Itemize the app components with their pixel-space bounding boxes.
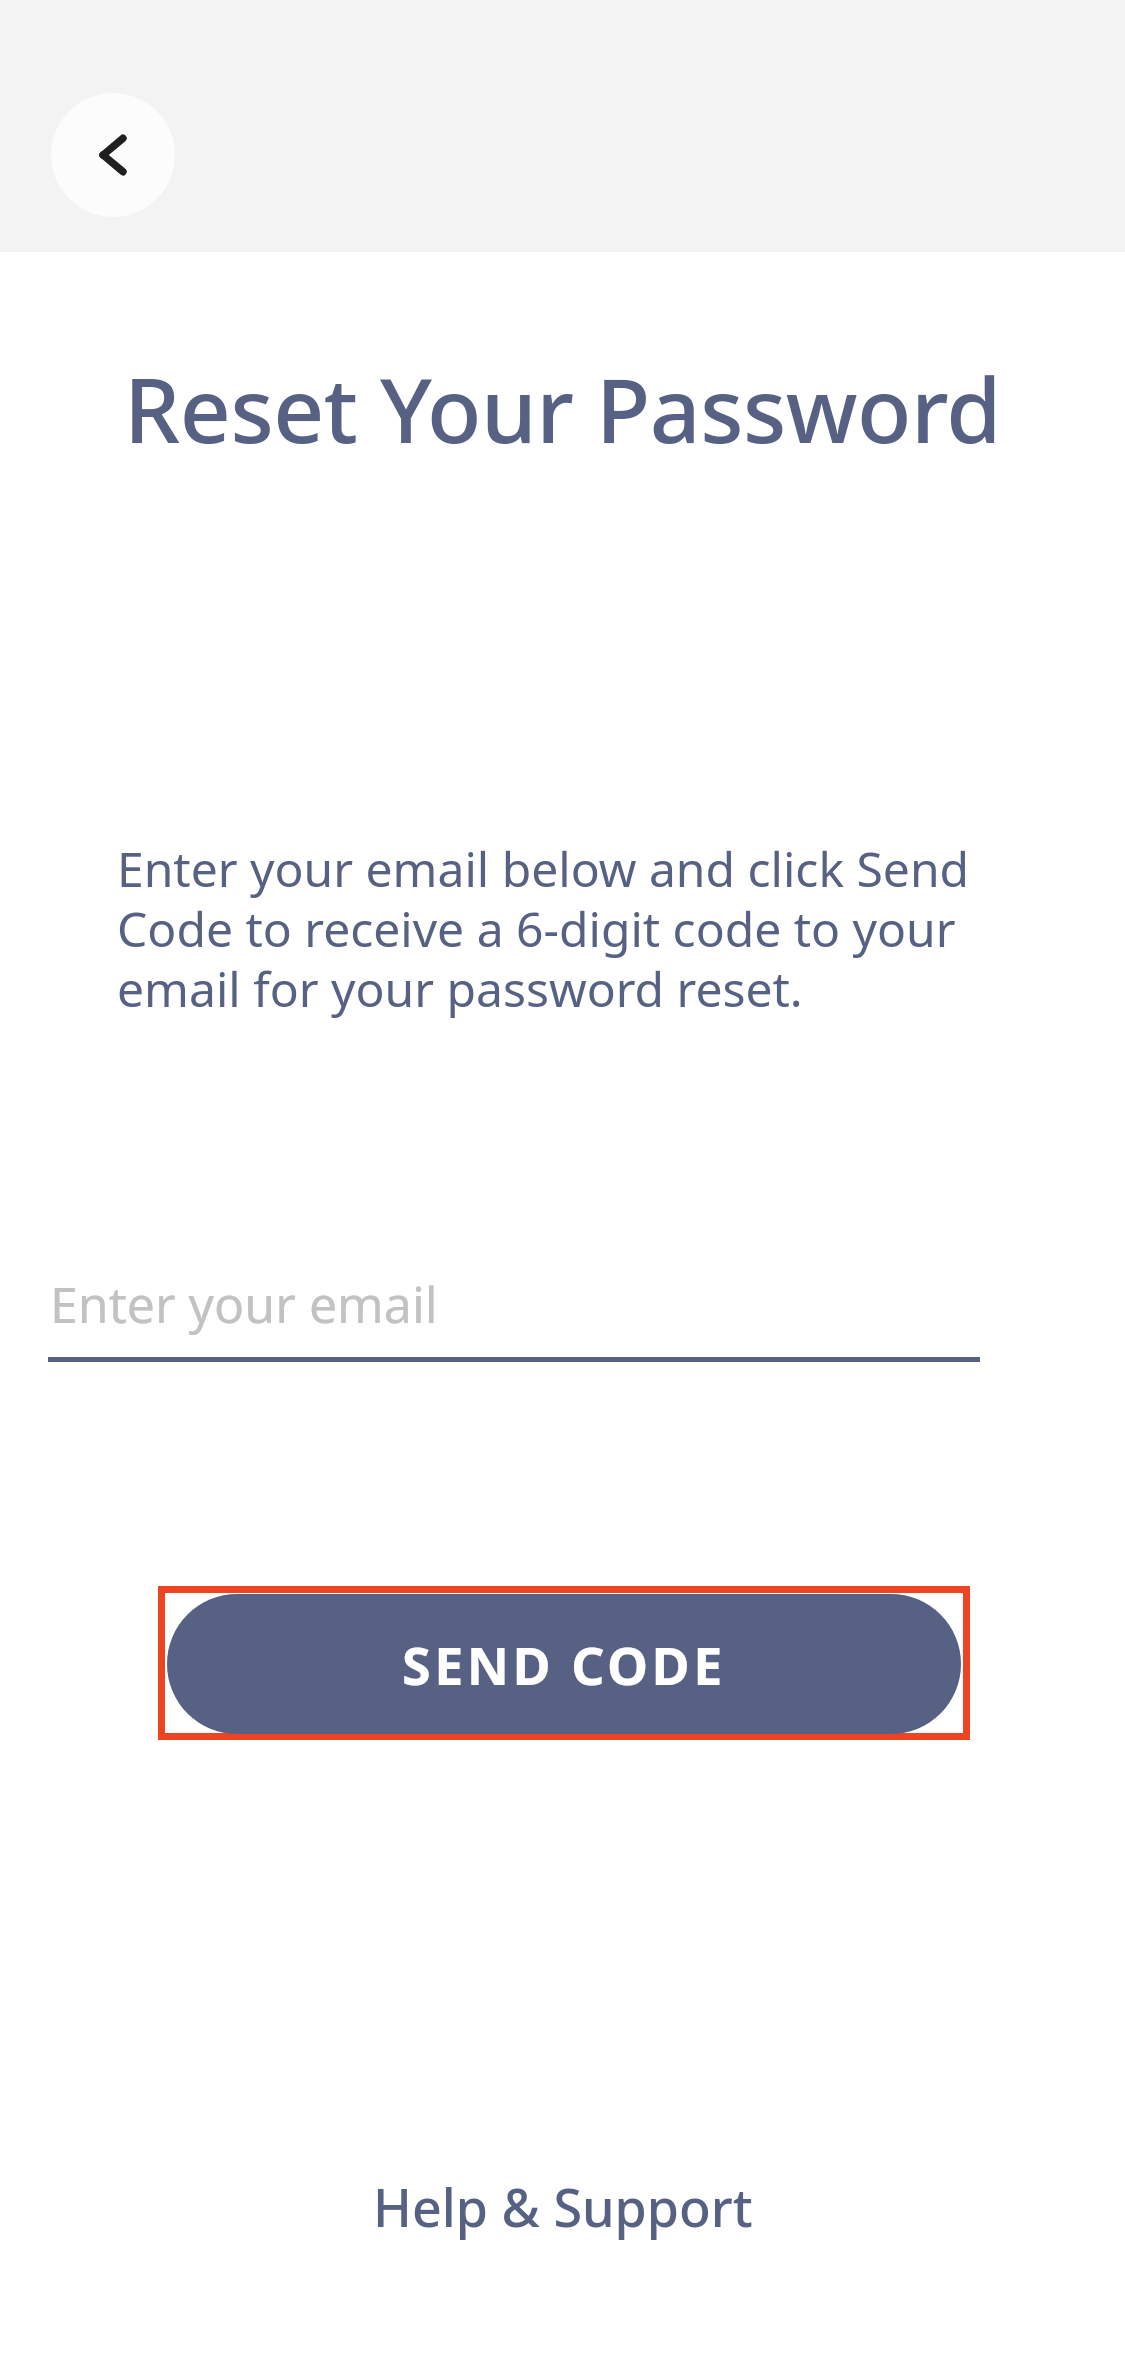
staticText: Enter your email below and click Send Co…	[117, 836, 1009, 1021]
staticText: Enter your email	[50, 1270, 438, 1338]
button[interactable]: Enter your email	[48, 1248, 980, 1362]
button[interactable]: Back	[51, 93, 175, 217]
staticText: SEND CODE	[402, 1629, 726, 1700]
button[interactable]: SEND CODE	[167, 1594, 961, 1734]
staticText: Reset Your Password	[0, 348, 1125, 469]
button[interactable]: Help & Support	[373, 2171, 753, 2242]
